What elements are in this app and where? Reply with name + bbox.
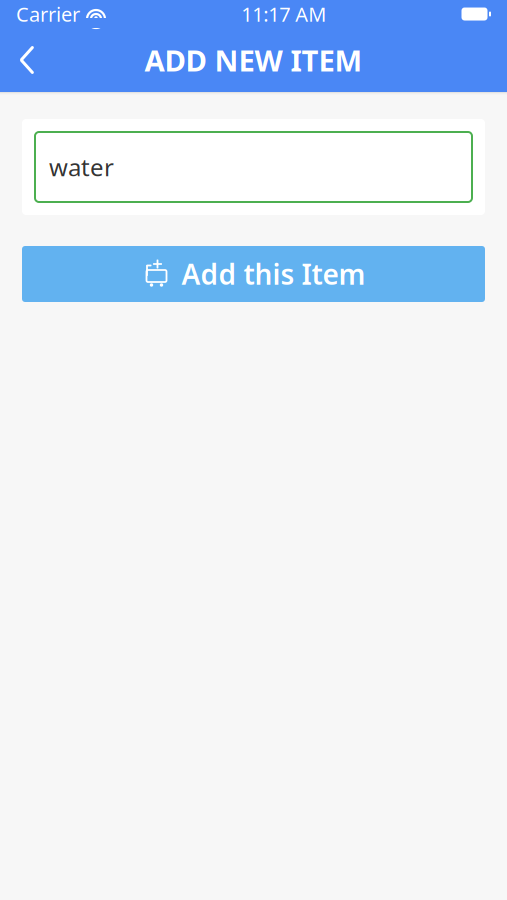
staticText: Carrier	[16, 1, 80, 27]
staticText: water	[49, 151, 114, 183]
button[interactable]: Add this Item	[22, 246, 485, 302]
button[interactable]: Back	[0, 35, 54, 85]
staticText: 11:17 AM	[241, 1, 326, 27]
staticText: Add this Item	[181, 255, 365, 293]
staticText: ADD NEW ITEM	[144, 40, 362, 79]
